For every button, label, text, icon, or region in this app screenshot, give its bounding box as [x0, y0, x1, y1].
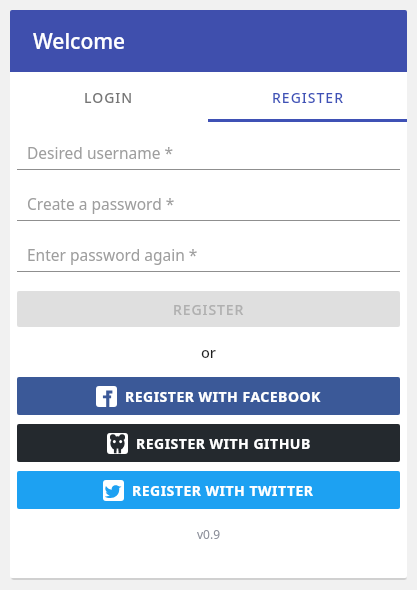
button[interactable]: REGISTER [208, 72, 407, 122]
staticText: LOGIN [84, 88, 134, 107]
staticText: Desired username * [27, 142, 174, 163]
button[interactable]: REGISTER WITH FACEBOOK [17, 377, 400, 415]
staticText: REGISTER [272, 88, 344, 107]
staticText: REGISTER WITH FACEBOOK [125, 387, 321, 406]
button[interactable]: Enter password again * [17, 237, 400, 272]
staticText: Welcome [33, 27, 126, 56]
button[interactable]: LOGIN [10, 72, 208, 122]
staticText: REGISTER [173, 300, 245, 319]
button[interactable]: REGISTER WITH GITHUB [17, 424, 400, 462]
staticText: REGISTER WITH TWITTER [132, 481, 314, 500]
staticText: Create a password * [27, 193, 175, 214]
button[interactable]: Desired username * [17, 135, 400, 170]
staticText: v0.9 [197, 526, 221, 542]
staticText: Enter password again * [27, 244, 198, 265]
staticText: REGISTER WITH GITHUB [136, 434, 311, 453]
staticText: or [201, 342, 216, 362]
button[interactable]: REGISTER [17, 291, 400, 327]
button[interactable]: REGISTER WITH TWITTER [17, 471, 400, 509]
button[interactable]: Create a password * [17, 186, 400, 221]
